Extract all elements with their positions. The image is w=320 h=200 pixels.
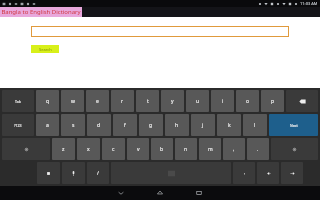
button[interactable]: b: [151, 138, 173, 160]
button[interactable]: Bangla to English Dictionary: [0, 7, 82, 17]
staticText: a: [46, 122, 49, 129]
button[interactable]: p: [261, 90, 284, 112]
button[interactable]: Recents: [193, 187, 205, 199]
staticText: v: [137, 146, 140, 153]
staticText: .: [257, 146, 259, 153]
button[interactable]: a: [36, 114, 59, 136]
staticText: b: [160, 146, 164, 153]
staticText: w: [71, 98, 75, 105]
button[interactable]: t: [136, 90, 159, 112]
staticText: ?123: [14, 123, 22, 128]
staticText: s: [72, 122, 75, 129]
button[interactable]: h: [165, 114, 189, 136]
staticText: Tab: [15, 99, 21, 104]
button[interactable]: u: [186, 90, 209, 112]
staticText: y: [171, 98, 174, 105]
button[interactable]: .: [247, 138, 269, 160]
staticText: x: [87, 146, 90, 153]
button[interactable]: emoji: [37, 162, 60, 184]
button[interactable]: q: [36, 90, 59, 112]
button[interactable]: ?123: [2, 114, 34, 136]
staticText: Search: [39, 47, 52, 52]
button[interactable]: Next: [269, 114, 318, 136]
staticText: i: [222, 98, 224, 105]
button[interactable]: o: [236, 90, 259, 112]
staticText: f: [124, 122, 126, 129]
button[interactable]: [31, 26, 289, 37]
button[interactable]: l: [243, 114, 267, 136]
button[interactable]: s: [61, 114, 85, 136]
staticText: ,: [233, 146, 235, 153]
button[interactable]: mic: [62, 162, 85, 184]
staticText: d: [97, 122, 101, 129]
staticText: l: [254, 122, 256, 129]
button[interactable]: z: [52, 138, 75, 160]
staticText: Bangla to English Dictionary: [1, 8, 81, 16]
staticText: Next: [290, 123, 298, 128]
staticText: u: [196, 98, 200, 105]
staticText: c: [112, 146, 115, 153]
staticText: j: [202, 122, 204, 129]
button[interactable]: y: [161, 90, 184, 112]
staticText: k: [228, 122, 231, 129]
button[interactable]: Hide keyboard: [115, 187, 127, 199]
button[interactable]: /: [87, 162, 109, 184]
staticText: o: [246, 98, 250, 105]
staticText: /: [97, 170, 99, 177]
button[interactable]: e: [86, 90, 109, 112]
staticText: r: [121, 98, 124, 105]
button[interactable]: w: [61, 90, 84, 112]
button[interactable]: i: [211, 90, 234, 112]
button[interactable]: g: [139, 114, 163, 136]
staticText: p: [271, 98, 275, 105]
staticText: h: [175, 122, 179, 129]
staticText: t: [147, 98, 149, 105]
button[interactable]: arrowl: [257, 162, 279, 184]
staticText: e: [96, 98, 99, 105]
button[interactable]: v: [127, 138, 149, 160]
staticText: 11:03 AM: [300, 1, 318, 6]
button[interactable]: backspace: [286, 90, 318, 112]
button[interactable]: r: [111, 90, 134, 112]
button[interactable]: m: [199, 138, 221, 160]
button[interactable]: shift: [2, 138, 50, 160]
staticText: z: [62, 146, 65, 153]
button[interactable]: d: [87, 114, 111, 136]
button[interactable]: j: [191, 114, 215, 136]
staticText: q: [46, 98, 50, 105]
staticText: g: [149, 122, 153, 129]
button[interactable]: arrowr: [281, 162, 303, 184]
button[interactable]: Search: [31, 45, 59, 53]
staticText: m: [208, 146, 213, 153]
button[interactable]: f: [113, 114, 137, 136]
button[interactable]: dot: [233, 162, 255, 184]
button[interactable]: n: [175, 138, 197, 160]
button[interactable]: shift: [271, 138, 318, 160]
button[interactable]: Home: [154, 187, 166, 199]
button[interactable]: x: [77, 138, 100, 160]
button[interactable]: k: [217, 114, 241, 136]
staticText: n: [184, 146, 188, 153]
button[interactable]: c: [102, 138, 125, 160]
button[interactable]: Tab: [2, 90, 34, 112]
button[interactable]: ,: [223, 138, 245, 160]
